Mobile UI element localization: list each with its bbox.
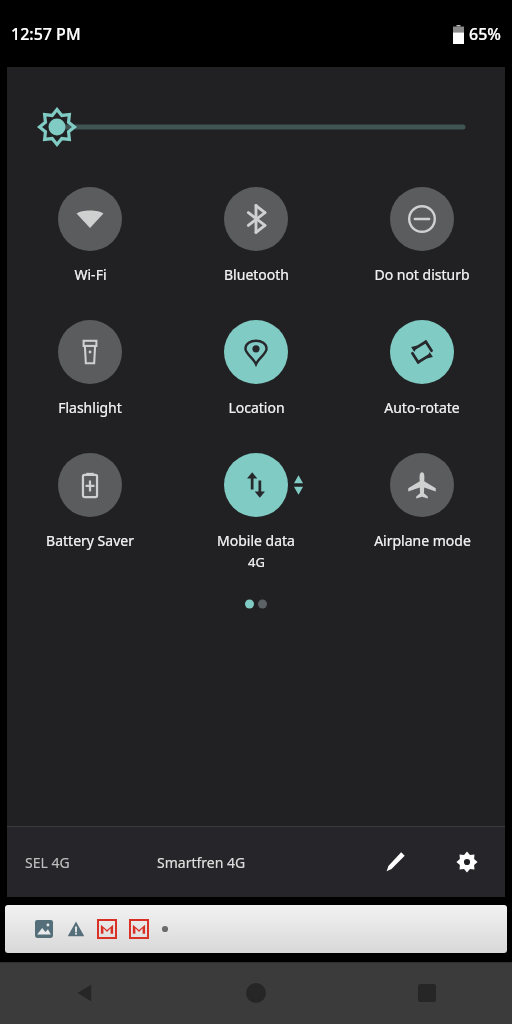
staticText: Do not disturb [374, 265, 470, 284]
button[interactable]: Bluetooth [173, 187, 339, 284]
staticText: Flashlight [58, 398, 122, 417]
button[interactable]: Recent apps [341, 962, 512, 1024]
staticText: Wi-Fi [74, 265, 107, 284]
button[interactable]: Flashlight [7, 320, 173, 417]
staticText: Bluetooth [224, 265, 289, 284]
staticText: 4G [248, 553, 265, 571]
button[interactable] [5, 905, 507, 953]
staticText: Location [228, 398, 285, 417]
button[interactable]: Auto-rotate [339, 320, 505, 417]
button[interactable]: Airplane mode [339, 453, 505, 550]
staticText: 65% [469, 23, 501, 45]
button[interactable]: Do not disturb [339, 187, 505, 284]
staticText: 12:57 PM [11, 23, 81, 45]
staticText: Airplane mode [374, 531, 471, 550]
button[interactable]: Mobile data [173, 453, 339, 571]
button[interactable] [7, 67, 505, 187]
button[interactable]: Settings [447, 842, 487, 882]
staticText: Battery Saver [46, 531, 134, 550]
button[interactable]: Home [170, 962, 341, 1024]
staticText: Mobile data [217, 531, 295, 550]
staticText: Auto-rotate [384, 398, 460, 417]
button[interactable]: Location [173, 320, 339, 417]
button[interactable]: Wi-Fi [7, 187, 173, 284]
button[interactable]: Edit tiles [375, 842, 415, 882]
staticText: SEL 4G [25, 853, 70, 872]
button[interactable]: Battery Saver [7, 453, 173, 550]
staticText: Smartfren 4G [157, 853, 246, 872]
